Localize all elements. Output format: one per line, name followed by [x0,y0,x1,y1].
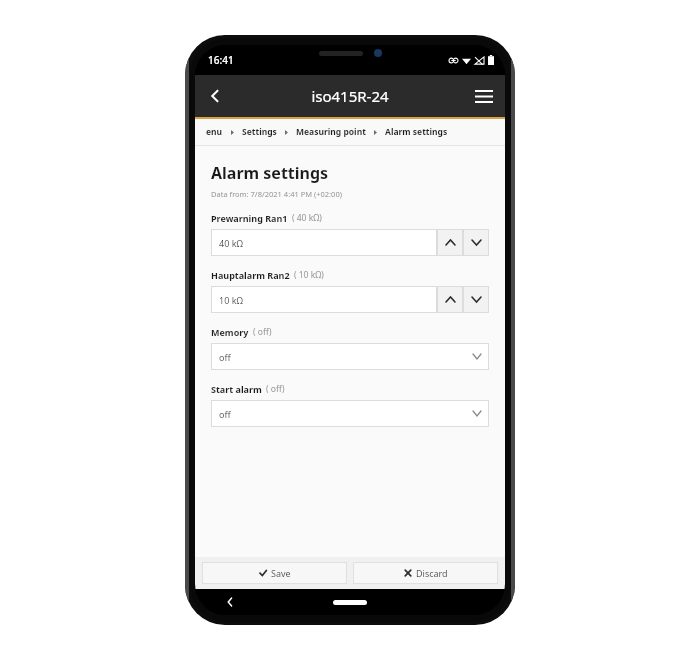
button[interactable]: Save [202,562,347,584]
staticText: Prewarning Ran1 [211,212,288,224]
staticText: 10 kΩ [219,294,243,306]
staticText: Hauptalarm Ran2 [211,269,290,281]
button[interactable]: Increase [437,229,463,256]
staticText: Start alarm [211,383,262,395]
staticText: off [219,408,231,420]
button[interactable]: Decrease [463,286,489,313]
staticText: Save [271,567,291,579]
staticText: iso415R-24 [311,86,389,106]
staticText: enu [206,126,223,138]
button[interactable]: off [211,343,489,370]
button[interactable]: Home [333,600,367,605]
button[interactable]: Discard [353,562,498,584]
staticText: Data from: 7/8/2021 4:41 PM (+02:00) [211,189,342,199]
button[interactable]: Measuring point [295,126,367,138]
staticText: Discard [416,567,448,579]
staticText: ( off) [266,383,285,395]
staticText: 16:41 [208,53,234,67]
staticText: Alarm settings [211,162,329,184]
button[interactable]: Alarm settings [384,126,449,138]
staticText: 40 kΩ [219,237,243,249]
button[interactable]: 10 kΩ [211,286,437,313]
button[interactable]: Settings [241,126,278,138]
button[interactable]: enu [205,126,224,138]
staticText: Measuring point [296,126,366,138]
staticText: Settings [242,126,277,138]
button[interactable]: Decrease [463,229,489,256]
button[interactable]: Back [221,593,239,611]
staticText: Alarm settings [385,126,448,138]
button[interactable]: Menu [463,75,505,117]
staticText: off [219,351,231,363]
button[interactable]: 40 kΩ [211,229,437,256]
staticText: ( off) [253,326,272,338]
button[interactable]: off [211,400,489,427]
staticText: Memory [211,326,249,338]
staticText: ( 10 kΩ) [294,269,324,281]
button[interactable]: Back [195,75,235,117]
button[interactable]: Increase [437,286,463,313]
staticText: ( 40 kΩ) [292,212,322,224]
